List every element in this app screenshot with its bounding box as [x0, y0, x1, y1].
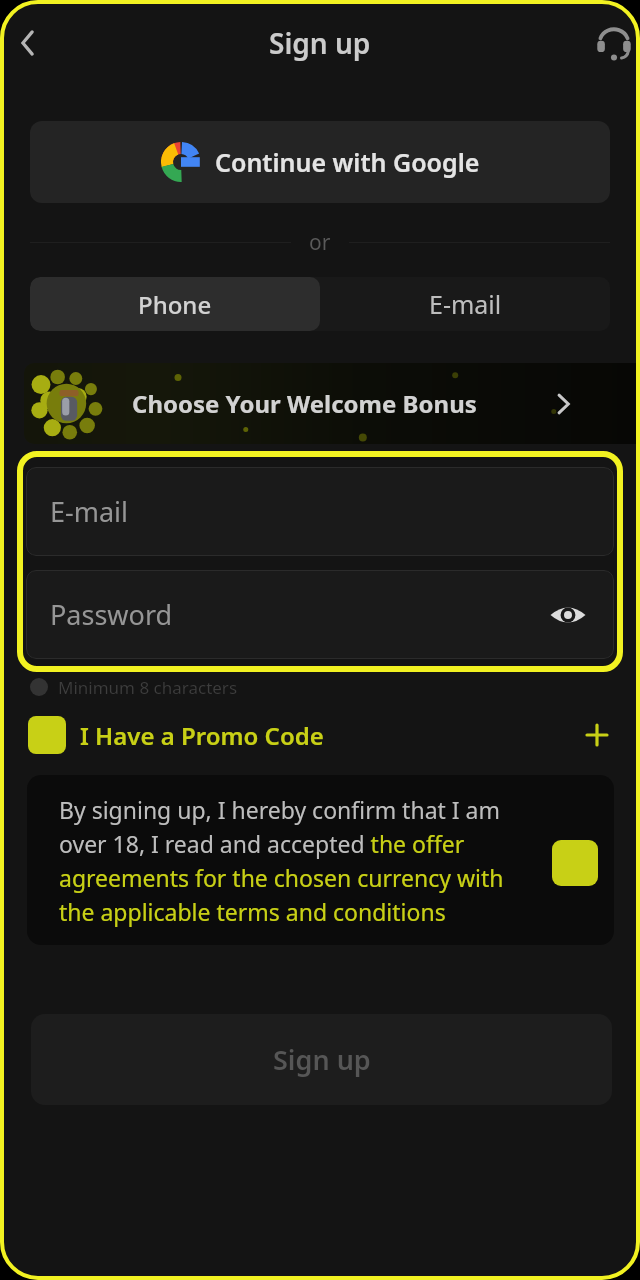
staticText: E-mail: [50, 493, 129, 530]
staticText: Phone: [138, 288, 212, 321]
staticText: or: [309, 228, 331, 257]
button[interactable]: Choose Your Welcome Bonus: [24, 363, 640, 444]
button[interactable]: E-mail: [26, 467, 614, 556]
staticText: Continue with Google: [215, 145, 480, 179]
button[interactable]: Sign up: [31, 1014, 612, 1105]
button[interactable]: Back: [0, 15, 56, 71]
button[interactable]: E-mail: [320, 277, 610, 331]
staticText: By signing up, I hereby confirm that I a…: [59, 794, 529, 927]
button[interactable]: I Have a Promo Code: [28, 712, 608, 758]
staticText: E-mail: [429, 287, 502, 321]
staticText: Password: [50, 596, 173, 633]
button[interactable]: Password: [26, 570, 614, 659]
button[interactable]: Continue with Google: [30, 121, 610, 203]
button[interactable]: Show password: [542, 589, 594, 641]
staticText: Minimum 8 characters: [58, 676, 238, 699]
staticText: I Have a Promo Code: [80, 719, 324, 752]
staticText: Sign up: [273, 1041, 371, 1078]
button[interactable]: Support: [586, 15, 640, 71]
button[interactable]: Phone: [30, 277, 320, 331]
button[interactable]: Accept terms: [552, 840, 598, 886]
staticText: Choose Your Welcome Bonus: [132, 387, 477, 420]
staticText: Sign up: [269, 24, 371, 62]
